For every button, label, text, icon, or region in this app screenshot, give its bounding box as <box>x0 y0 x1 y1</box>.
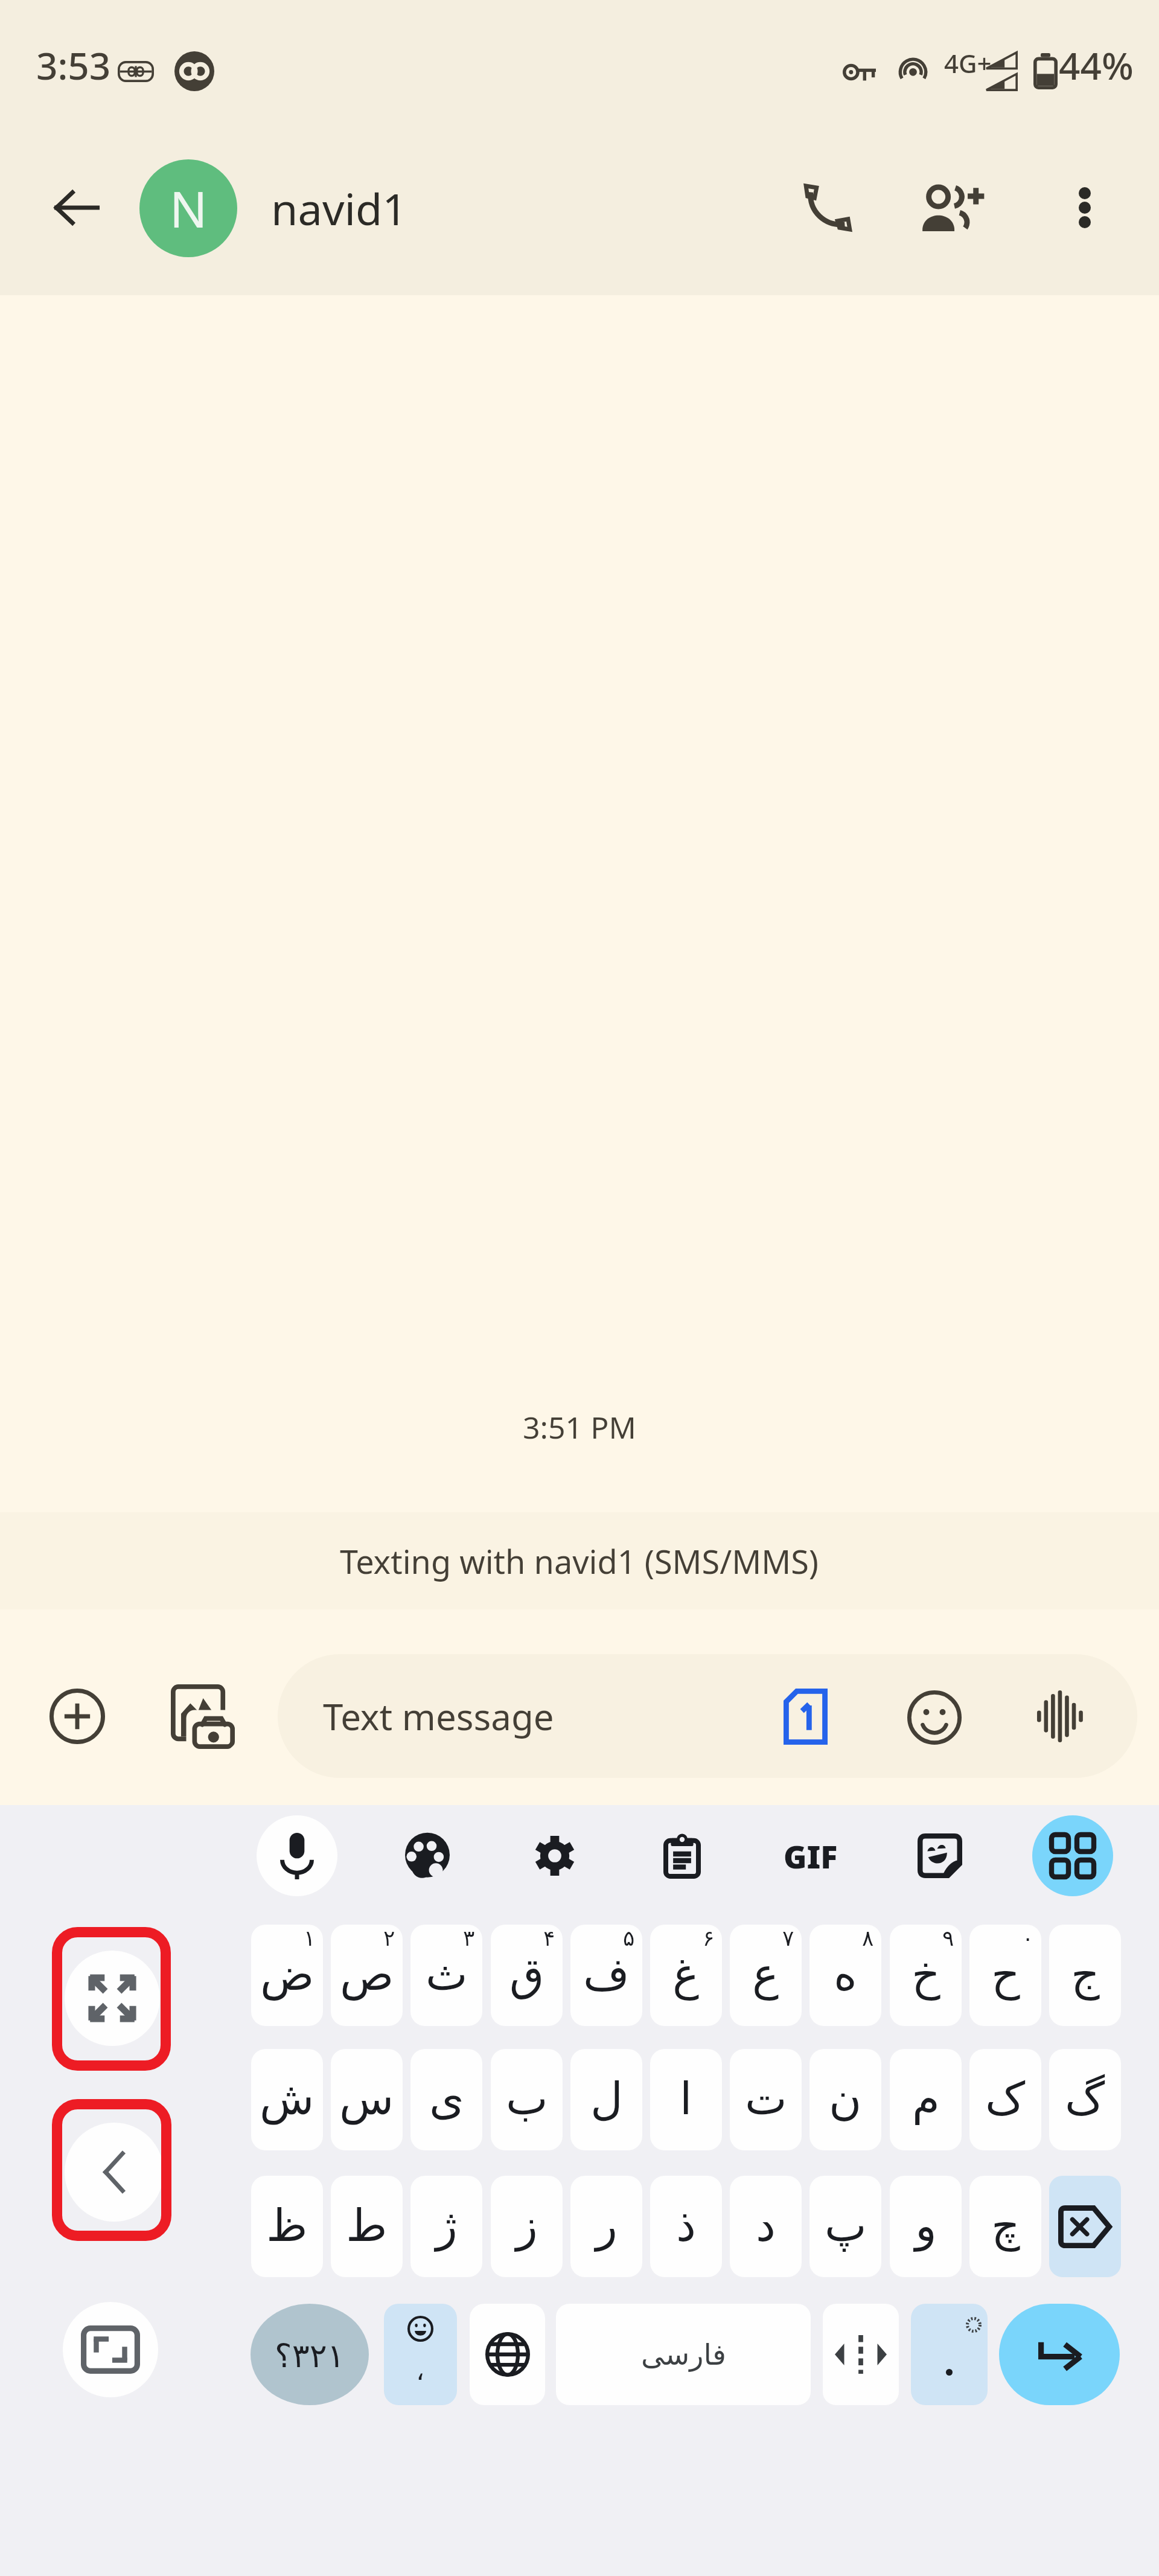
staticText: ٢ <box>383 1926 395 1951</box>
button[interactable]: ح <box>969 1925 1041 2026</box>
staticText: گ <box>1065 2073 1105 2124</box>
button[interactable]: ض <box>251 1925 323 2026</box>
button[interactable]: Collapse <box>65 2123 164 2222</box>
staticText: ۵ <box>623 1926 635 1951</box>
button[interactable]: Move cursor <box>823 2304 899 2405</box>
button[interactable]: م <box>890 2049 962 2150</box>
button[interactable]: Expand keyboard <box>65 1951 160 2046</box>
button[interactable]: Clipboard <box>642 1815 723 1896</box>
button[interactable]: Themes <box>387 1815 468 1896</box>
button[interactable]: ل <box>570 2049 642 2150</box>
button[interactable]: ق <box>491 1925 563 2026</box>
button[interactable]: گ <box>1049 2049 1121 2150</box>
button[interactable]: د <box>730 2176 802 2277</box>
button[interactable]: More options <box>1042 165 1127 250</box>
button[interactable]: Switch language <box>470 2304 545 2405</box>
staticText: navid1 <box>271 179 407 238</box>
button[interactable]: چ <box>969 2176 1041 2277</box>
staticText: د <box>756 2199 776 2251</box>
staticText: 3:53 <box>36 40 111 91</box>
staticText: ط <box>346 2199 388 2251</box>
button[interactable]: Add attachment <box>35 1674 120 1759</box>
button[interactable]: ص <box>331 1925 403 2026</box>
button[interactable]: ب <box>491 2049 563 2150</box>
button[interactable]: خ <box>890 1925 962 2026</box>
button[interactable]: Back <box>34 165 118 250</box>
button[interactable]: N <box>139 121 407 295</box>
button[interactable]: س <box>331 2049 403 2150</box>
staticText: غ <box>672 1948 700 2000</box>
button[interactable]: Voice message <box>1021 1677 1099 1756</box>
staticText: ۸ <box>862 1926 874 1951</box>
button[interactable]: ک <box>969 2049 1041 2150</box>
staticText: ٣ <box>463 1926 475 1951</box>
staticText: ف <box>583 1948 630 2000</box>
button[interactable]: Enter <box>999 2304 1120 2405</box>
staticText: ل <box>590 2073 623 2124</box>
staticText: ک <box>985 2073 1026 2124</box>
staticText: ج <box>1071 1948 1100 2000</box>
staticText: ز <box>516 2199 538 2251</box>
button[interactable]: و <box>890 2176 962 2277</box>
button[interactable]: ت <box>730 2049 802 2150</box>
button[interactable]: Emoji <box>384 2304 457 2405</box>
staticText: فارسی <box>641 2338 726 2371</box>
button[interactable]: ا <box>650 2049 722 2150</box>
button[interactable]: Stickers <box>899 1815 980 1896</box>
staticText: پ <box>825 2199 867 2251</box>
button[interactable]: Add people <box>912 165 996 250</box>
button[interactable]: ی <box>410 2049 482 2150</box>
button[interactable]: Gallery and camera <box>161 1674 245 1759</box>
staticText: ذ <box>676 2199 696 2251</box>
button[interactable]: ژ <box>410 2176 482 2277</box>
staticText: ص <box>340 1948 394 2000</box>
staticText: ۰ <box>1022 1926 1034 1951</box>
button[interactable]: ‭؟۳۲۱‬ <box>251 2304 369 2405</box>
button[interactable]: Backspace <box>1049 2176 1121 2277</box>
staticText: ت <box>745 2073 787 2124</box>
button[interactable]: ه <box>809 1925 881 2026</box>
staticText: 4G+ <box>944 46 992 80</box>
button[interactable]: ث <box>410 1925 482 2026</box>
staticText: ۴ <box>543 1926 555 1951</box>
button[interactable]: SIM 1 <box>766 1677 845 1756</box>
button[interactable]: Text message <box>278 1654 1137 1778</box>
staticText: ن <box>829 2073 862 2124</box>
button[interactable]: Emoji <box>895 1678 974 1757</box>
staticText: ژ <box>436 2199 458 2251</box>
staticText: ع <box>752 1948 779 2000</box>
button[interactable]: ف <box>570 1925 642 2026</box>
button[interactable]: ن <box>809 2049 881 2150</box>
staticText: ض <box>260 1948 314 2000</box>
staticText: ۹ <box>942 1926 954 1951</box>
button[interactable]: ظ <box>251 2176 323 2277</box>
button[interactable]: GIF <box>770 1815 851 1896</box>
staticText: Texting with navid1 (SMS/MMS) <box>340 1539 819 1584</box>
staticText: ش <box>260 2073 314 2124</box>
button[interactable]: ر <box>570 2176 642 2277</box>
button[interactable]: More keyboard options <box>1032 1815 1113 1896</box>
button[interactable]: ج <box>1049 1925 1121 2026</box>
button[interactable]: Resize keyboard <box>63 2302 158 2397</box>
button[interactable] <box>911 2304 988 2405</box>
button[interactable]: فارسی <box>556 2304 811 2405</box>
button[interactable]: Call <box>785 165 869 250</box>
button[interactable]: ط <box>331 2176 403 2277</box>
button[interactable]: ز <box>491 2176 563 2277</box>
button[interactable]: ع <box>730 1925 802 2026</box>
button[interactable]: ذ <box>650 2176 722 2277</box>
staticText: ه <box>834 1948 857 2000</box>
staticText: م <box>912 2073 940 2124</box>
button[interactable]: Keyboard settings <box>514 1815 595 1896</box>
staticText: ١ <box>304 1926 316 1951</box>
button[interactable]: پ <box>809 2176 881 2277</box>
staticText: ، <box>416 2355 425 2386</box>
staticText: ۶ <box>703 1926 715 1951</box>
button[interactable]: ش <box>251 2049 323 2150</box>
staticText: ب <box>506 2073 548 2124</box>
button[interactable]: Voice input <box>257 1815 337 1896</box>
staticText: 44% <box>1059 40 1134 91</box>
button[interactable]: غ <box>650 1925 722 2026</box>
staticText: ح <box>991 1948 1020 2000</box>
staticText: س <box>339 2073 394 2124</box>
